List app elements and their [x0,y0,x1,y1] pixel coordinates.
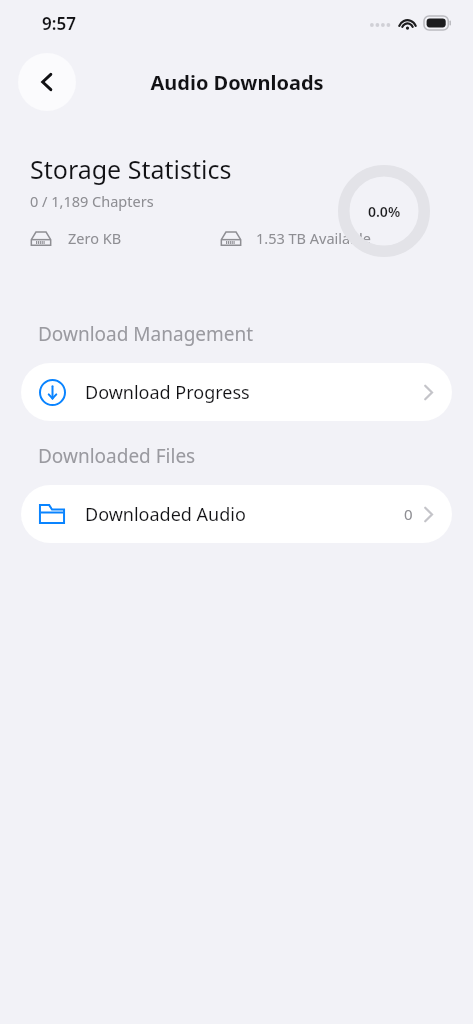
staticText: Zero KB [68,228,122,248]
staticText: 1.53 TB Available [256,228,372,248]
staticText: 0 / 1,189 Chapters [30,191,154,211]
staticText: Downloaded Audio [85,502,246,527]
button[interactable]: Download Progress [21,363,452,421]
staticText: Download Progress [85,380,250,405]
staticText: 0.0% [368,202,401,221]
button[interactable]: Back [18,53,76,111]
staticText: Audio Downloads [150,69,324,96]
staticText: Downloaded Files [38,443,196,469]
staticText: Download Management [38,321,254,347]
staticText: 0 [404,504,413,524]
staticText: Storage Statistics [30,152,232,186]
staticText: 9:57 [42,12,76,35]
button[interactable]: Downloaded Audio [21,485,452,543]
